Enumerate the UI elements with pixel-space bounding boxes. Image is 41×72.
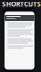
button[interactable]: SHORTCUTS [0,0,41,8]
staticText: SHORTCUTS [2,0,41,8]
